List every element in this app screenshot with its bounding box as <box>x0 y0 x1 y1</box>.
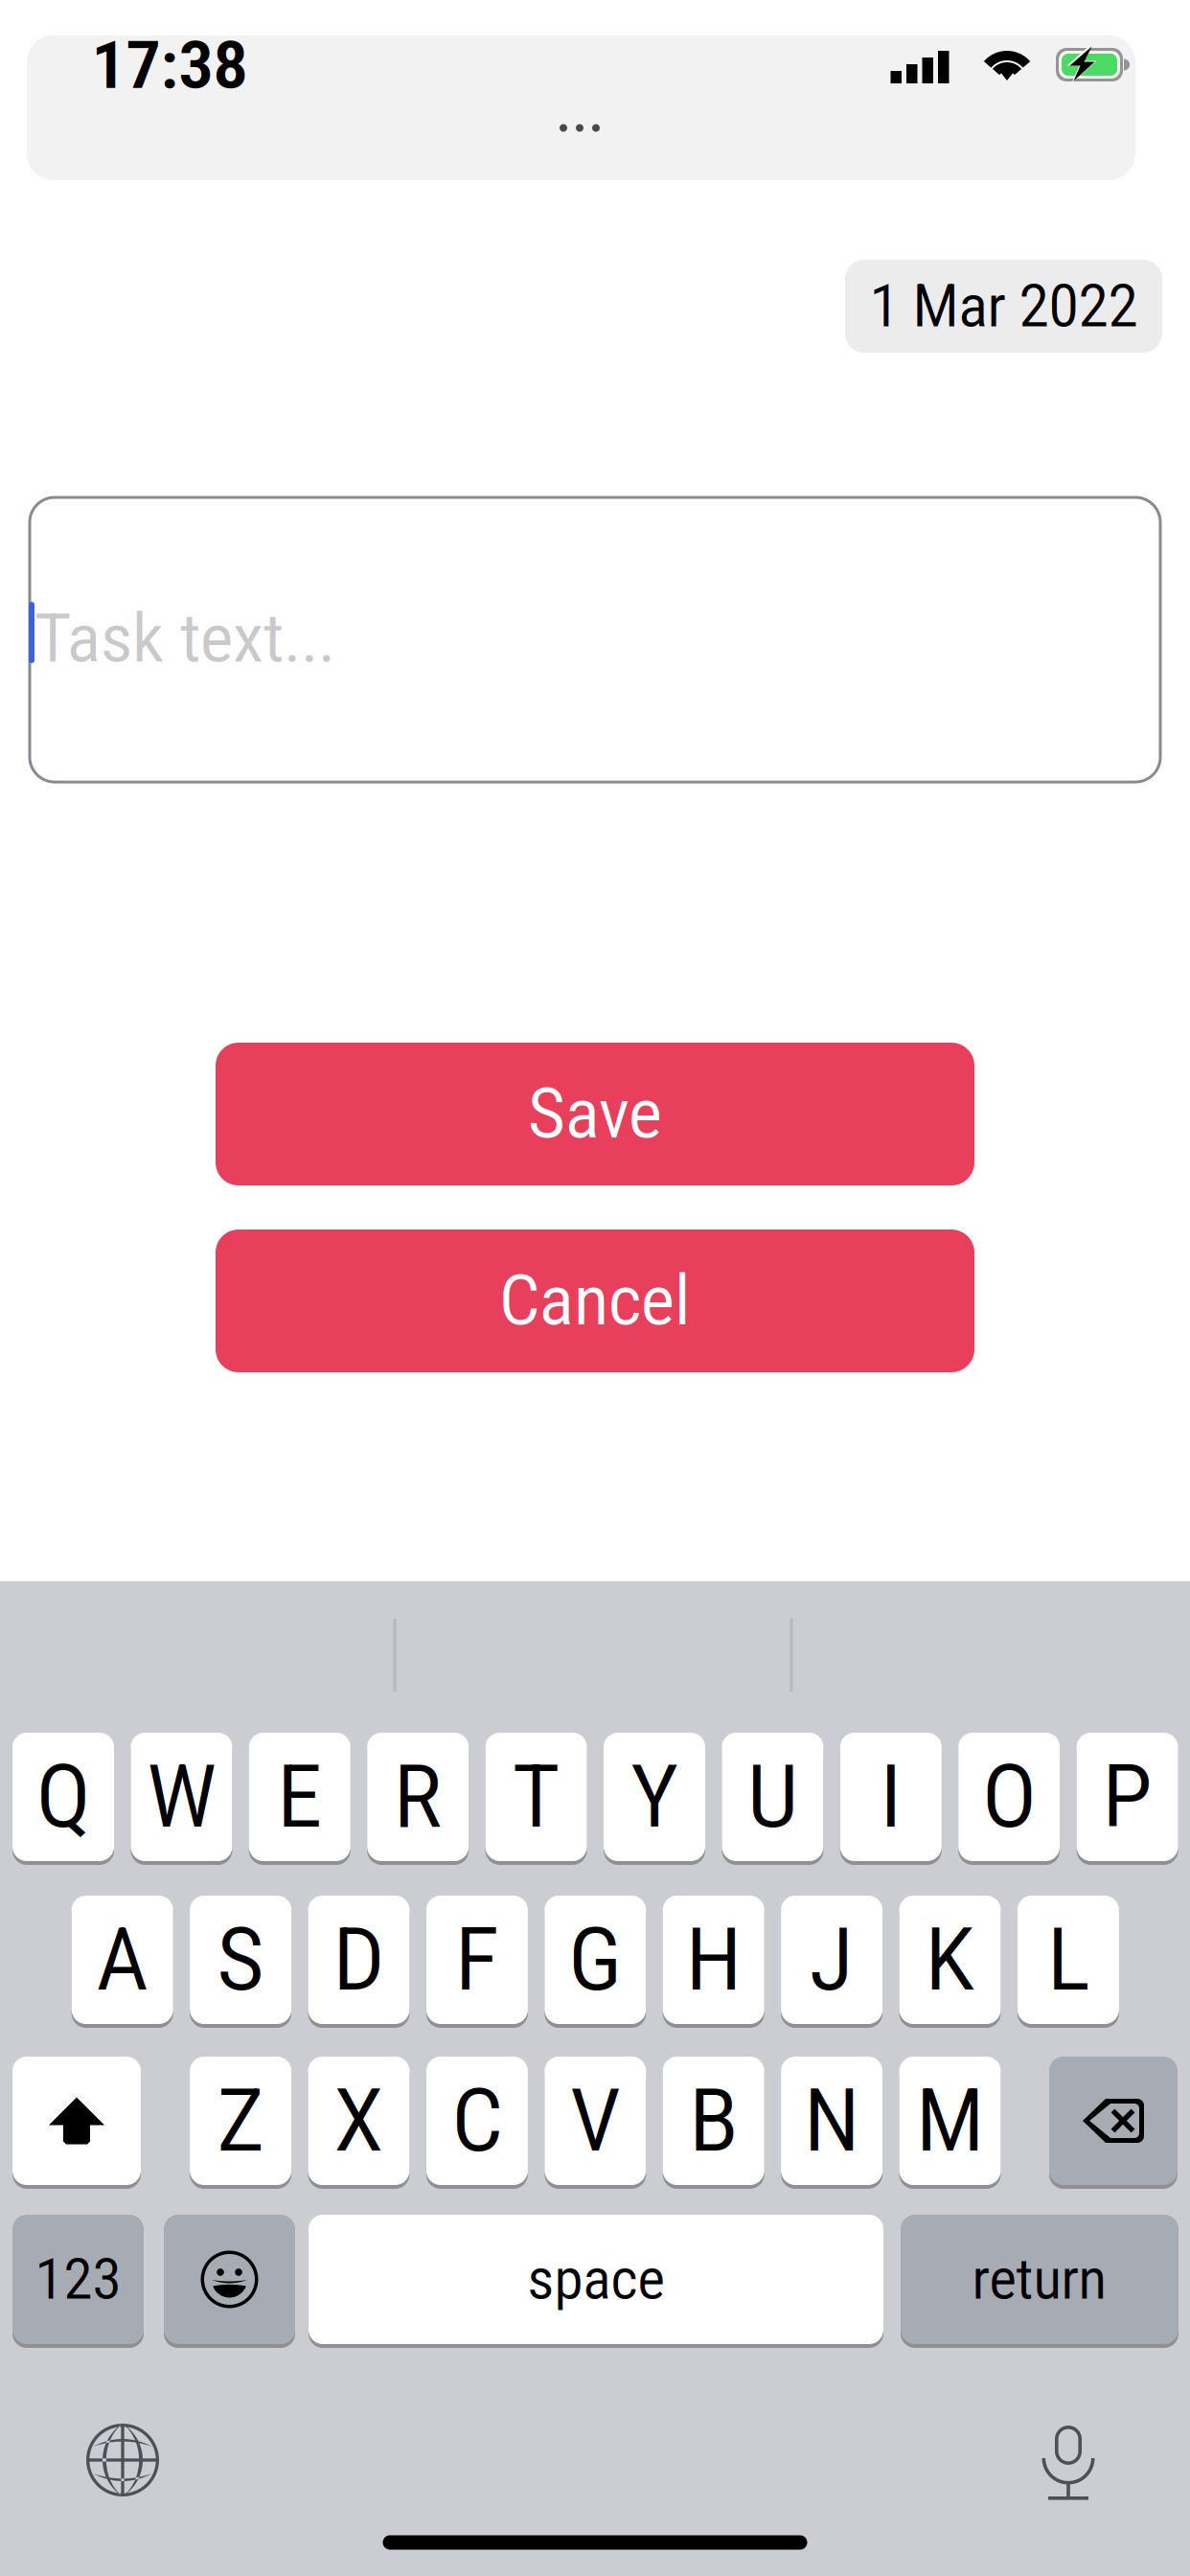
staticText: Y <box>631 1746 678 1848</box>
button[interactable]: Save <box>216 1043 974 1185</box>
button[interactable]: G <box>545 1892 646 2028</box>
button[interactable]: return <box>901 2211 1179 2348</box>
staticText: return <box>972 2246 1107 2312</box>
staticText: L <box>1047 1909 1089 2011</box>
staticText: 1 Mar 2022 <box>870 272 1138 341</box>
button[interactable]: A <box>72 1892 173 2028</box>
button[interactable]: Next keyboard <box>85 2422 160 2498</box>
staticText: J <box>810 1909 854 2011</box>
button[interactable]: B <box>663 2053 764 2189</box>
staticText: W <box>147 1746 216 1848</box>
button[interactable]: D <box>308 1892 410 2028</box>
button[interactable]: N <box>781 2053 883 2189</box>
button[interactable]: L <box>1017 1892 1119 2028</box>
staticText: Save <box>528 1074 662 1155</box>
button[interactable]: U <box>722 1729 823 1865</box>
button[interactable]: 1 Mar 2022 <box>845 260 1162 353</box>
button[interactable]: Z <box>190 2053 291 2189</box>
staticText: 17:38 <box>92 26 248 104</box>
button[interactable]: J <box>781 1892 883 2028</box>
button[interactable]: M <box>899 2053 1001 2189</box>
button[interactable]: Shift <box>12 2053 141 2189</box>
button[interactable]: O <box>958 1729 1060 1865</box>
staticText: space <box>527 2246 664 2312</box>
button[interactable]: F <box>426 1892 528 2028</box>
staticText: Z <box>217 2070 264 2172</box>
button[interactable]: E <box>249 1729 350 1865</box>
button[interactable]: X <box>308 2053 410 2189</box>
button[interactable]: T <box>485 1729 587 1865</box>
staticText: F <box>455 1909 499 2011</box>
staticText: R <box>394 1746 442 1848</box>
button[interactable]: V <box>545 2053 646 2189</box>
staticText: U <box>747 1746 798 1848</box>
button[interactable]: Y <box>604 1729 705 1865</box>
button[interactable]: Cancel <box>216 1230 974 1372</box>
staticText: A <box>96 1909 148 2011</box>
staticText: G <box>568 1909 622 2011</box>
button[interactable]: C <box>426 2053 528 2189</box>
button[interactable]: Dictation <box>1041 2412 1095 2500</box>
staticText: H <box>686 1909 741 2011</box>
staticText: E <box>277 1746 322 1848</box>
button[interactable]: S <box>190 1892 291 2028</box>
staticText: B <box>689 2070 738 2172</box>
button[interactable]: R <box>367 1729 469 1865</box>
staticText: D <box>333 1909 385 2011</box>
button[interactable]: P <box>1077 1729 1178 1865</box>
button[interactable]: W <box>131 1729 232 1865</box>
staticText: K <box>925 1909 975 2011</box>
staticText: C <box>452 2070 502 2172</box>
staticText: S <box>217 1909 264 2011</box>
staticText: P <box>1102 1746 1152 1848</box>
staticText: 123 <box>35 2246 121 2312</box>
button[interactable]: K <box>899 1892 1001 2028</box>
button[interactable]: 123 <box>12 2211 144 2348</box>
button[interactable]: space <box>309 2211 883 2348</box>
button[interactable]: Delete <box>1049 2053 1178 2189</box>
staticText: V <box>570 2070 620 2172</box>
staticText: M <box>916 2070 984 2172</box>
staticText: O <box>982 1746 1036 1848</box>
staticText: Cancel <box>499 1260 691 1341</box>
staticText: Task text... <box>34 599 335 678</box>
staticText: N <box>804 2070 860 2172</box>
staticText: Q <box>36 1746 90 1848</box>
button[interactable]: I <box>840 1729 942 1865</box>
staticText: I <box>880 1746 902 1848</box>
button[interactable]: Emoji <box>164 2211 295 2348</box>
staticText: X <box>334 2070 384 2172</box>
staticText: T <box>513 1746 560 1848</box>
button[interactable]: Q <box>12 1729 114 1865</box>
button[interactable]: H <box>663 1892 764 2028</box>
